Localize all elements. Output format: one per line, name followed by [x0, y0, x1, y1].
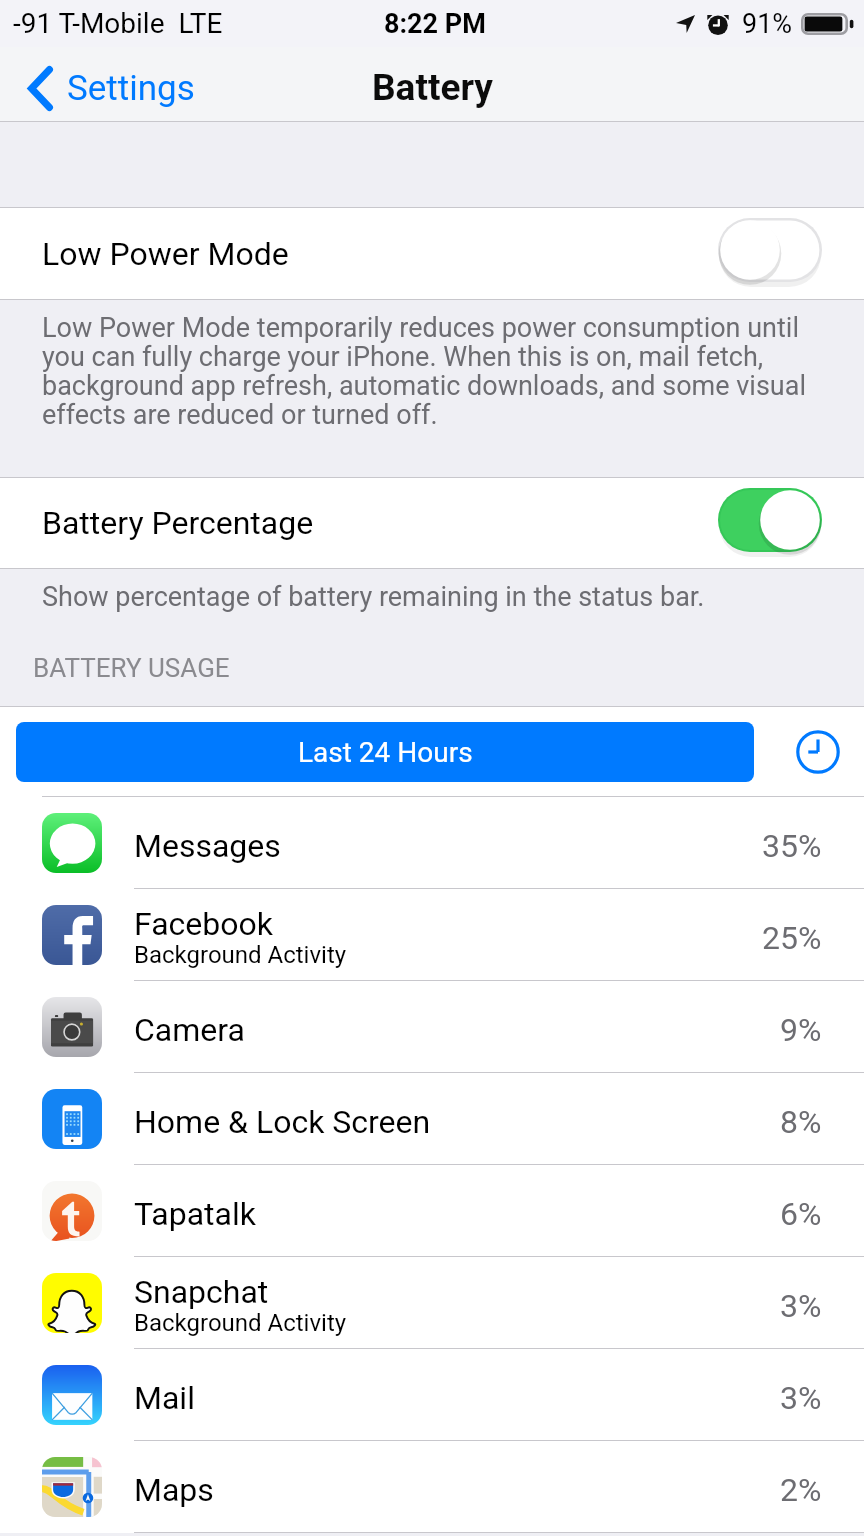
- button[interactable]: Camera: [0, 981, 864, 1073]
- staticText: 35%: [762, 827, 822, 865]
- staticText: Show percentage of battery remaining in …: [42, 581, 705, 613]
- button[interactable]: Low Power Mode: [0, 208, 864, 299]
- staticText: Battery: [372, 66, 493, 109]
- button[interactable]: Home & Lock Screen: [0, 1073, 864, 1165]
- staticText: 91%: [742, 8, 793, 40]
- staticText: Camera: [134, 1011, 245, 1049]
- staticText: Low Power Mode: [42, 235, 289, 273]
- staticText: Low Power Mode temporarily reduces power…: [42, 312, 808, 431]
- staticText: Messages: [134, 827, 281, 865]
- staticText: Mail: [134, 1379, 195, 1417]
- staticText: Battery Percentage: [42, 504, 314, 542]
- button[interactable]: Switch on: [718, 487, 822, 560]
- staticText: 25%: [762, 919, 822, 957]
- button[interactable]: Tapatalk: [0, 1165, 864, 1257]
- staticText: Background Activity: [134, 1309, 347, 1337]
- button[interactable]: Messages: [0, 797, 864, 889]
- button[interactable]: Maps: [0, 1441, 864, 1533]
- staticText: Settings: [67, 68, 195, 109]
- staticText: 6%: [780, 1195, 822, 1233]
- staticText: Maps: [134, 1471, 214, 1509]
- staticText: 3%: [780, 1379, 822, 1417]
- staticText: Background Activity: [134, 941, 347, 969]
- staticText: 3%: [780, 1287, 822, 1325]
- staticText: Snapchat: [134, 1273, 269, 1311]
- staticText: Tapatalk: [134, 1195, 256, 1233]
- button[interactable]: Switch off: [718, 217, 822, 290]
- staticText: BATTERY USAGE: [33, 653, 230, 683]
- staticText: Facebook: [134, 905, 273, 943]
- staticText: Last 24 Hours: [298, 736, 473, 769]
- staticText: 2%: [780, 1471, 822, 1509]
- staticText: 8%: [780, 1103, 822, 1141]
- staticText: 9%: [780, 1011, 822, 1049]
- button[interactable]: Last 24 Hours: [16, 722, 754, 782]
- staticText: -91 T-Mobile LTE: [13, 7, 223, 40]
- staticText: Home & Lock Screen: [134, 1103, 431, 1141]
- button[interactable]: Settings: [0, 47, 209, 122]
- button[interactable]: Snapchat: [0, 1257, 864, 1349]
- staticText: 8:22 PM: [384, 8, 486, 40]
- button[interactable]: Show usage by time: [794, 728, 842, 776]
- button[interactable]: Mail: [0, 1349, 864, 1441]
- button[interactable]: Facebook: [0, 889, 864, 981]
- button[interactable]: Battery Percentage: [0, 478, 864, 568]
